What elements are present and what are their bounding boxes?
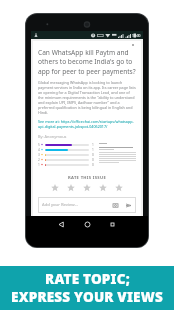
button[interactable]: Home [82, 219, 93, 230]
button[interactable]: Back [56, 219, 67, 230]
staticText: 1 [92, 143, 94, 147]
staticText: 4 [38, 148, 40, 152]
staticText: 0 [92, 163, 94, 167]
staticText: 1 [92, 148, 94, 152]
button[interactable]: Send [124, 201, 133, 210]
staticText: Can WhatsApp kill Paytm and others to be… [38, 48, 136, 76]
staticText: 3 [38, 153, 40, 157]
button[interactable]: Close [130, 42, 136, 48]
button[interactable]: Rate 4 star [99, 184, 107, 192]
button[interactable]: See more at: https://officechai.com/star… [38, 119, 136, 129]
staticText: Add your Review... [42, 202, 78, 208]
staticText: By: Anonymous [38, 134, 67, 139]
button[interactable]: Rate 5 star [115, 184, 123, 192]
button[interactable]: Add your Review... [38, 197, 136, 213]
staticText: 1 [38, 163, 40, 167]
staticText: RATE THIS ISSUE [38, 175, 136, 181]
staticText: EXPRESS YOUR VIEWS [11, 288, 163, 306]
staticText: 0 [92, 153, 94, 157]
staticText: 5 [38, 143, 40, 147]
button[interactable]: Rate 2 star [67, 184, 75, 192]
staticText: Global messaging WhatsApp is looking to … [38, 80, 136, 115]
staticText: 0 [92, 158, 94, 162]
button[interactable]: Recents [107, 219, 118, 230]
button[interactable]: Add photo [111, 201, 120, 210]
staticText: 13:00 [132, 33, 141, 37]
staticText: 2 [38, 158, 40, 162]
staticText: RATE TOPIC; [45, 270, 130, 288]
staticText: See more at: https://officechai.com/star… [38, 119, 136, 129]
button[interactable]: Rate 3 star [83, 184, 91, 192]
button[interactable]: Rate 1 star [51, 184, 59, 192]
